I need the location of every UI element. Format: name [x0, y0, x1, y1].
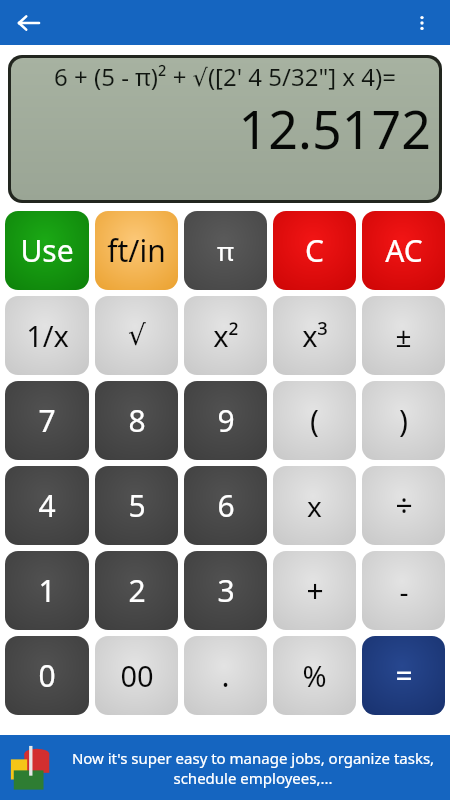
button[interactable]: ±	[362, 296, 445, 375]
button[interactable]: 4	[5, 466, 89, 545]
button[interactable]: 9	[184, 381, 267, 460]
button[interactable]: √	[95, 296, 178, 375]
button[interactable]: 3	[184, 551, 267, 630]
staticText: √	[128, 319, 146, 352]
staticText: 6 + (5 - π)² + √([2' 4 5/32"] x 4)=	[19, 60, 431, 93]
staticText: ÷	[395, 485, 413, 526]
staticText: 7	[38, 400, 56, 441]
staticText: ft/in	[107, 230, 166, 271]
button[interactable]: Back	[10, 5, 46, 41]
staticText: 2	[128, 570, 146, 611]
staticText: x³	[302, 316, 328, 355]
button[interactable]: ÷	[362, 466, 445, 545]
button[interactable]: (	[273, 381, 356, 460]
staticText: (	[310, 400, 319, 441]
staticText: 3	[217, 570, 235, 611]
button[interactable]: %	[273, 636, 356, 715]
button[interactable]: π	[184, 211, 267, 290]
button[interactable]: 00	[95, 636, 178, 715]
staticText: .	[221, 655, 230, 696]
staticText: 4	[38, 485, 56, 526]
button[interactable]: 8	[95, 381, 178, 460]
button[interactable]: 7	[5, 381, 89, 460]
button[interactable]: 2	[95, 551, 178, 630]
button[interactable]: .	[184, 636, 267, 715]
staticText: x	[307, 487, 322, 525]
staticText: AC	[385, 230, 423, 271]
staticText: 1	[38, 570, 56, 611]
button[interactable]: x²	[184, 296, 267, 375]
button[interactable]: -	[362, 551, 445, 630]
button[interactable]: x³	[273, 296, 356, 375]
staticText: 6	[217, 485, 235, 526]
button[interactable]: )	[362, 381, 445, 460]
button[interactable]: Use	[5, 211, 89, 290]
button[interactable]: 6	[184, 466, 267, 545]
staticText: 00	[120, 656, 154, 695]
staticText: +	[306, 570, 324, 611]
button[interactable]: ft/in	[95, 211, 178, 290]
staticText: )	[399, 400, 408, 441]
button[interactable]: 1/x	[5, 296, 89, 375]
staticText: -	[399, 572, 409, 610]
staticText: 12.5172	[19, 93, 431, 164]
button[interactable]: C	[273, 211, 356, 290]
button[interactable]: 5	[95, 466, 178, 545]
staticText: 5	[128, 485, 146, 526]
staticText: =	[395, 655, 413, 696]
staticText: ±	[395, 317, 412, 355]
staticText: 9	[217, 400, 235, 441]
button[interactable]: More options	[404, 5, 440, 41]
staticText: C	[305, 230, 324, 271]
button[interactable]: =	[362, 636, 445, 715]
staticText: Use	[20, 230, 74, 271]
button[interactable]: +	[273, 551, 356, 630]
staticText: x²	[213, 316, 239, 355]
staticText: 8	[128, 400, 146, 441]
staticText: π	[217, 233, 234, 268]
staticText: 1/x	[26, 316, 69, 355]
button[interactable]: Now it's super easy to manage jobs, orga…	[0, 735, 450, 800]
staticText: 0	[38, 655, 56, 696]
button[interactable]: AC	[362, 211, 445, 290]
button[interactable]: 1	[5, 551, 89, 630]
staticText: Now it's super easy to manage jobs, orga…	[62, 748, 444, 788]
button[interactable]: 0	[5, 636, 89, 715]
button[interactable]: x	[273, 466, 356, 545]
staticText: %	[302, 656, 327, 695]
